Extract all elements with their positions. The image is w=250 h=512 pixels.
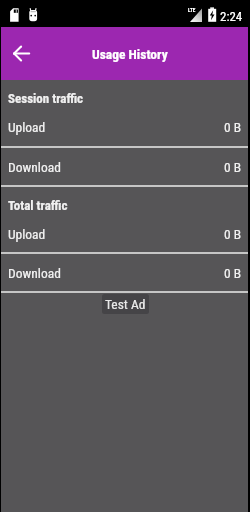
button[interactable]: Upload: [0, 108, 250, 146]
staticText: Download: [8, 265, 61, 281]
button[interactable]: Upload: [0, 215, 250, 252]
button[interactable]: Download: [0, 254, 250, 291]
staticText: LTE: [188, 7, 196, 13]
staticText: 0 B: [224, 226, 242, 242]
staticText: Download: [8, 159, 61, 175]
staticText: Upload: [8, 119, 46, 135]
staticText: Total traffic: [8, 198, 68, 213]
staticText: 2:24: [220, 9, 243, 24]
staticText: 0 B: [224, 119, 242, 135]
staticText: Upload: [8, 226, 46, 242]
staticText: Usage History: [92, 46, 168, 62]
staticText: Session traffic: [8, 91, 84, 106]
staticText: 0 B: [224, 265, 242, 281]
staticText: 0 B: [224, 159, 242, 175]
button[interactable]: Download: [0, 148, 250, 185]
staticText: Test Ad: [105, 296, 146, 312]
button[interactable]: Back: [7, 39, 36, 68]
